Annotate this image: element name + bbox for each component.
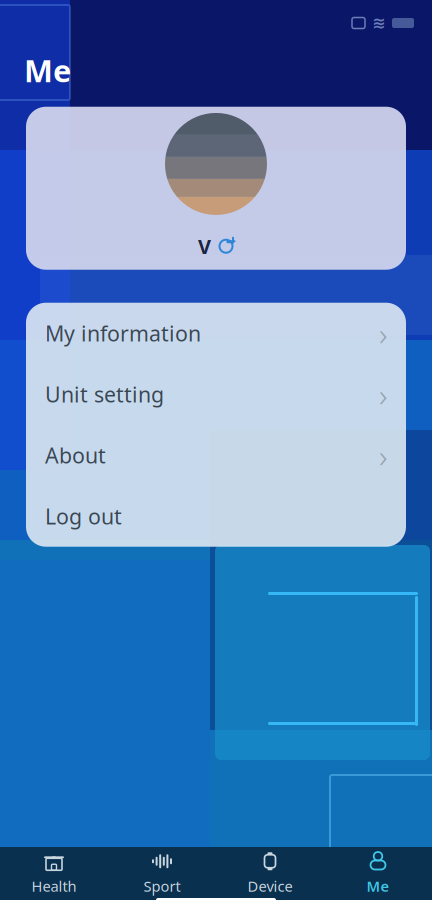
button[interactable]: Log out [26, 486, 406, 547]
staticText: Me [366, 876, 389, 896]
staticText: About [45, 441, 106, 469]
button[interactable]: Device [216, 847, 324, 900]
staticText: V [198, 233, 211, 259]
staticText: My information [45, 319, 201, 347]
staticText: Health [31, 876, 76, 896]
button[interactable]: Health [0, 847, 108, 900]
staticText: Me [24, 50, 71, 91]
staticText: Sport [143, 876, 180, 896]
button[interactable]: Me [324, 847, 432, 900]
staticText: › [379, 312, 387, 354]
button[interactable]: Unit setting [26, 364, 406, 425]
staticText: › [379, 434, 387, 476]
staticText: Log out [45, 502, 122, 530]
staticText: Unit setting [45, 380, 164, 408]
staticText: › [379, 373, 387, 415]
staticText: ≋ [372, 14, 385, 32]
button[interactable]: Profile, V [26, 107, 406, 270]
button[interactable]: Sport [108, 847, 216, 900]
button[interactable]: My information [26, 303, 406, 364]
staticText: Device [247, 876, 292, 896]
button[interactable]: About [26, 425, 406, 486]
